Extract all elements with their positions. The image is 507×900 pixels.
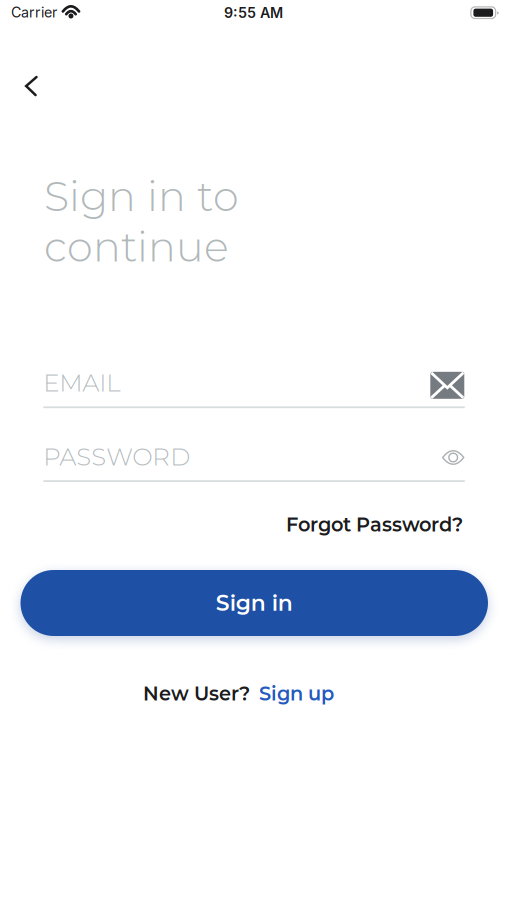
button[interactable]: Sign in	[20, 570, 488, 636]
staticText: 9:55 AM	[224, 4, 283, 21]
button[interactable]: Forgot Password?	[286, 513, 463, 536]
staticText: PASSWORD	[43, 442, 190, 472]
staticText: New User?	[143, 682, 250, 705]
button[interactable]: Back	[18, 70, 44, 102]
button[interactable]: Show password	[441, 448, 466, 467]
button[interactable]: PASSWORD	[43, 436, 465, 482]
button[interactable]: Sign up	[259, 682, 334, 705]
staticText: Sign in	[216, 590, 293, 616]
button[interactable]: EMAIL	[43, 362, 465, 408]
staticText: Forgot Password?	[286, 513, 463, 536]
staticText: EMAIL	[43, 368, 120, 398]
staticText: Carrier	[11, 4, 57, 21]
staticText: Sign in to continue	[44, 171, 239, 272]
staticText: Sign up	[259, 682, 334, 705]
